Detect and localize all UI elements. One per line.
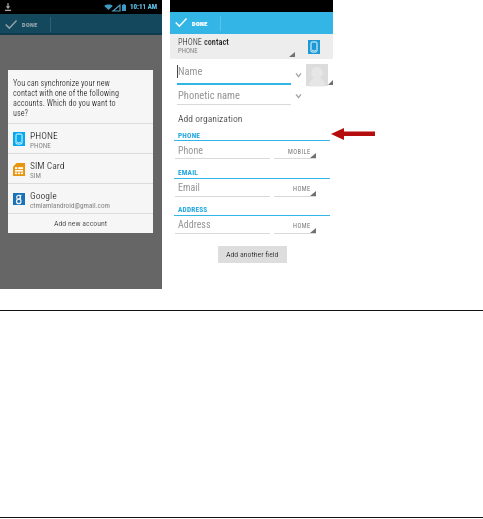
staticText: PHONE [178, 131, 201, 140]
staticText: Phone [178, 145, 203, 157]
staticText: PHONE [178, 37, 202, 47]
staticText: Google [30, 190, 57, 201]
button[interactable]: SIM Card [8, 154, 153, 184]
staticText: SIM [30, 171, 41, 179]
button[interactable]: Done [0, 14, 162, 35]
staticText: MOBILE [288, 148, 311, 156]
staticText: ADDRESS [178, 205, 208, 214]
button[interactable]: Done [170, 12, 333, 34]
staticText: Phonetic name [178, 89, 240, 101]
staticText: Add organization [178, 113, 243, 124]
staticText: Name [178, 65, 203, 77]
staticText: DONE [192, 20, 208, 27]
button[interactable]: Add another field [218, 246, 287, 263]
staticText: PHONE [30, 130, 58, 141]
staticText: Address [178, 219, 211, 231]
staticText: PHONE [30, 141, 51, 149]
staticText: You can synchronize your new contact wit… [13, 78, 130, 118]
staticText: Email [178, 182, 200, 194]
staticText: EMAIL [178, 168, 198, 177]
staticText: SIM Card [30, 160, 65, 171]
button[interactable]: Google [8, 184, 153, 214]
staticText: HOME [293, 185, 311, 193]
button[interactable]: PHONE [8, 124, 153, 154]
staticText: Add new account [54, 219, 108, 228]
staticText: DONE [22, 21, 38, 28]
staticText: PHONE [178, 47, 198, 55]
staticText: Add another field [226, 250, 279, 259]
button[interactable]: Add new account [8, 214, 153, 233]
button[interactable]: PHONE [170, 34, 333, 59]
staticText: contact [202, 37, 229, 47]
staticText: 10:11 AM [130, 3, 158, 11]
staticText: HOME [293, 222, 311, 230]
staticText: ctmlamlandroid@gmail.com [30, 201, 110, 209]
